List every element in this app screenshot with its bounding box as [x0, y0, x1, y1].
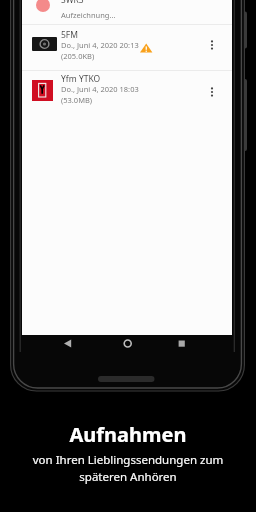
button[interactable] [206, 84, 218, 100]
button[interactable]: SWR3 [22, 0, 232, 24]
button[interactable]: Yfm YTKO [22, 70, 232, 116]
staticText: Aufnahmen [0, 421, 256, 448]
button[interactable] [206, 37, 218, 53]
staticText: Aufzeichnung... [61, 10, 116, 20]
staticText: Yfm YTKO [61, 73, 101, 85]
staticText: (53.0MB) [61, 95, 93, 105]
staticText: 5FM [61, 29, 78, 41]
staticText: von Ihren Lieblingssendungen zum spätere… [0, 452, 256, 485]
staticText: Do., Juni 4, 2020 20:13 [61, 40, 139, 50]
button[interactable]: 5FM [22, 24, 232, 70]
staticText: (205.0KB) [61, 51, 95, 61]
staticText: Do., Juni 4, 2020 18:03 [61, 84, 139, 94]
staticText: SWR3 [61, 0, 84, 6]
